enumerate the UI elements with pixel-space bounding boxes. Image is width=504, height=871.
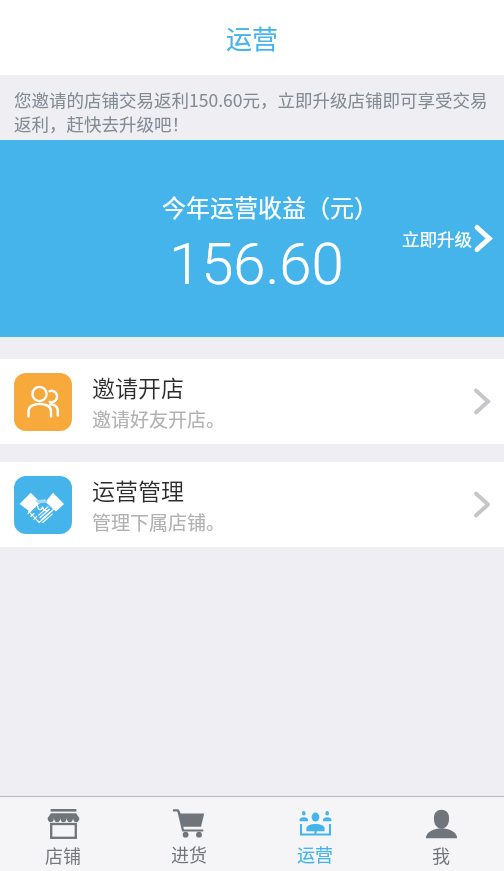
button[interactable]: 我 <box>378 797 504 871</box>
staticText: 立即升级 <box>402 226 472 251</box>
button[interactable]: 邀请开店 <box>0 359 504 444</box>
staticText: 管理下属店铺。 <box>92 508 226 536</box>
staticText: 我 <box>432 842 450 868</box>
staticText: 进货 <box>171 841 207 867</box>
staticText: 运营 <box>226 19 279 57</box>
button[interactable]: 进货 <box>126 797 252 871</box>
button[interactable]: 店铺 <box>0 797 126 871</box>
staticText: 邀请好友开店。 <box>92 405 226 433</box>
staticText: 邀请开店 <box>92 370 184 403</box>
staticText: 运营管理 <box>92 473 184 506</box>
staticText: 您邀请的店铺交易返利150.60元，立即升级店铺即可享受交易返利，赶快去升级吧！ <box>14 87 496 136</box>
staticText: 今年运营收益（元） <box>162 189 378 224</box>
staticText: 156.60 <box>169 230 344 298</box>
button[interactable]: 运营管理 <box>0 462 504 547</box>
button[interactable]: 运营 <box>252 797 378 871</box>
button[interactable]: 立即升级 <box>396 218 504 259</box>
staticText: 运营 <box>297 841 333 867</box>
staticText: 店铺 <box>45 842 81 868</box>
